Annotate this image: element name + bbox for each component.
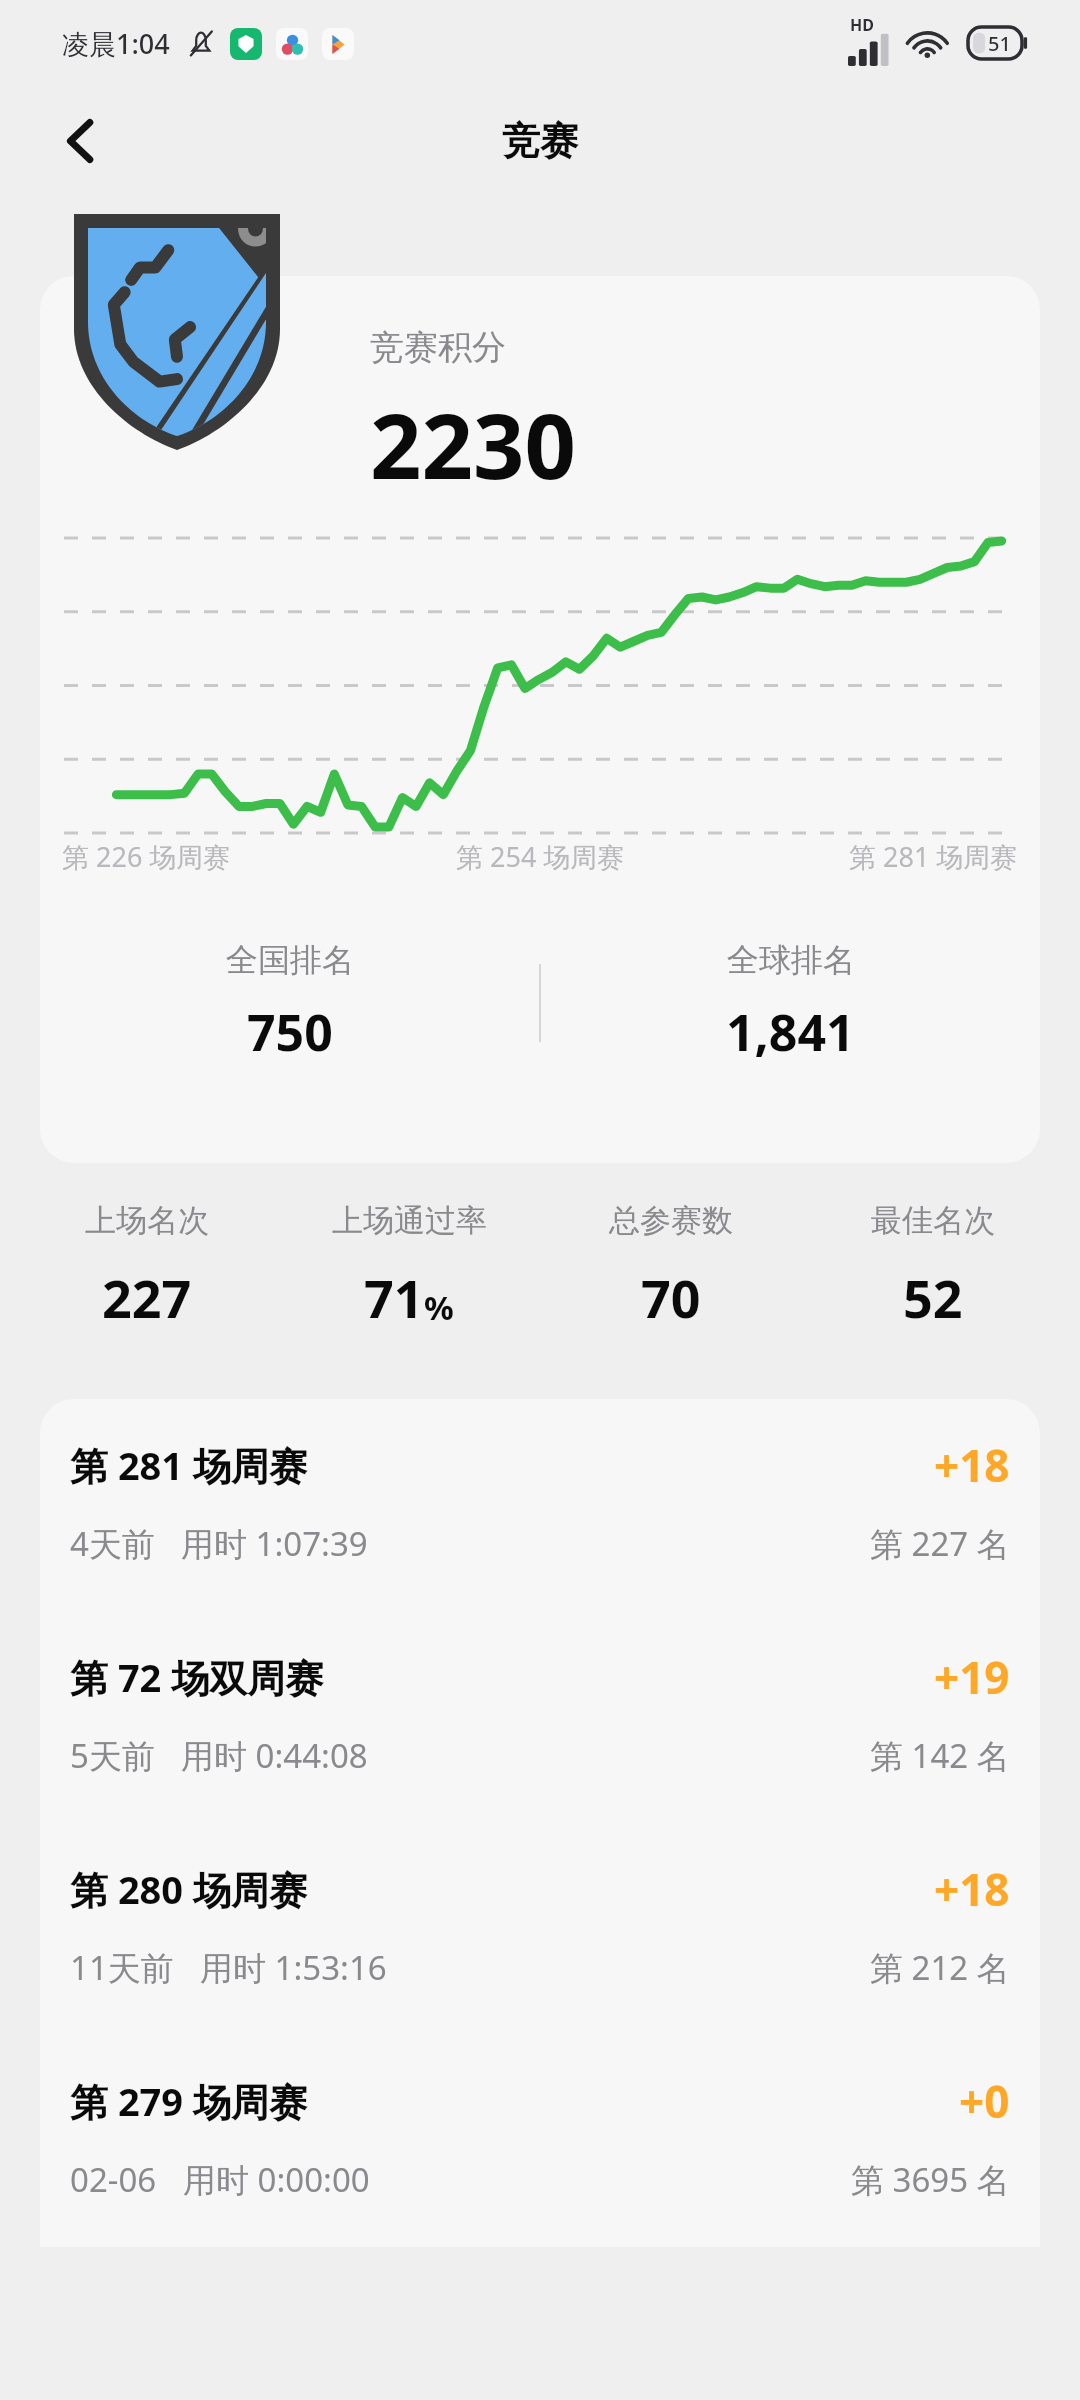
staticText: 第 3695 名 <box>851 2157 1010 2202</box>
staticText: 70 <box>641 1262 701 1333</box>
button[interactable]: 返回 <box>38 98 124 184</box>
button[interactable]: 总参赛数 <box>540 1201 802 1333</box>
staticText: 02-06 <box>70 2157 157 2202</box>
staticText: 第 142 名 <box>870 1733 1010 1778</box>
staticText: 52 <box>903 1262 963 1333</box>
staticText: 5天前 <box>70 1733 155 1778</box>
staticText: 2230 <box>370 383 576 506</box>
button[interactable]: 上场通过率 <box>278 1201 540 1333</box>
staticText: 第 212 名 <box>870 1945 1010 1990</box>
staticText: 用时 1:53:16 <box>200 1945 387 1990</box>
staticText: 总参赛数 <box>609 1201 733 1240</box>
staticText: 竞赛积分 <box>370 326 506 369</box>
button[interactable]: 上场名次 <box>16 1201 278 1333</box>
staticText: 上场通过率 <box>332 1201 487 1240</box>
staticText: HD <box>850 14 874 36</box>
staticText: 第 72 场双周赛 <box>70 1651 324 1703</box>
staticText: 第 279 场周赛 <box>70 2075 307 2127</box>
button[interactable]: 第 72 场双周赛 <box>40 1611 1040 1823</box>
staticText: 上场名次 <box>85 1201 209 1240</box>
staticText: 第 280 场周赛 <box>70 1863 307 1915</box>
staticText: 第 226 场周赛 <box>62 838 231 875</box>
staticText: 用时 1:07:39 <box>181 1521 368 1566</box>
button[interactable]: 第 279 场周赛 <box>40 2035 1040 2247</box>
button[interactable]: 最佳名次 <box>802 1201 1064 1333</box>
staticText: 71 <box>364 1262 424 1333</box>
staticText: +18 <box>934 1859 1010 1919</box>
staticText: 最佳名次 <box>871 1201 995 1240</box>
staticText: 1,841 <box>726 998 855 1066</box>
staticText: +18 <box>934 1435 1010 1495</box>
staticText: 全国排名 <box>226 940 354 980</box>
staticText: 凌晨1:04 <box>62 25 170 62</box>
button[interactable]: 全球排名 <box>541 940 1040 1066</box>
button[interactable]: 全国排名 <box>40 940 539 1066</box>
staticText: 51 <box>988 30 1011 57</box>
button[interactable]: 第 281 场周赛 <box>40 1399 1040 1611</box>
staticText: 第 281 场周赛 <box>849 838 1018 875</box>
staticText: 4天前 <box>70 1521 155 1566</box>
staticText: 用时 0:00:00 <box>183 2157 370 2202</box>
staticText: 全球排名 <box>727 940 855 980</box>
button[interactable]: 第 280 场周赛 <box>40 1823 1040 2035</box>
staticText: +0 <box>959 2071 1010 2131</box>
button[interactable] <box>40 276 1040 1163</box>
staticText: 第 281 场周赛 <box>70 1439 307 1491</box>
staticText: 第 227 名 <box>870 1521 1010 1566</box>
staticText: 227 <box>102 1262 192 1333</box>
staticText: 用时 0:44:08 <box>181 1733 368 1778</box>
staticText: 竞赛 <box>502 117 578 165</box>
staticText: 750 <box>247 998 333 1066</box>
staticText: +19 <box>934 1647 1010 1707</box>
staticText: 11天前 <box>70 1945 174 1990</box>
staticText: 第 254 场周赛 <box>456 838 625 875</box>
staticText: % <box>424 1285 454 1330</box>
